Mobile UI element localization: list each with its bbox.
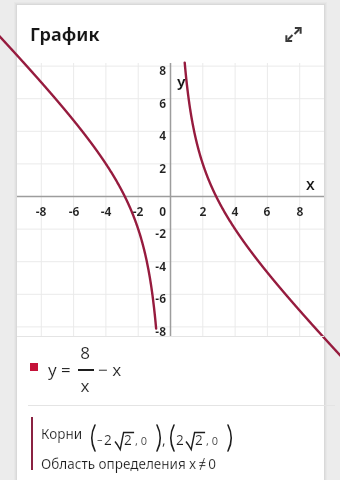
staticText: Корни: [41, 425, 83, 443]
staticText: x: [75, 374, 95, 397]
staticText: -6: [142, 290, 166, 306]
staticText: -4: [142, 258, 166, 274]
staticText: , 0: [135, 433, 148, 448]
staticText: -2: [126, 203, 150, 219]
staticText: 0: [150, 203, 166, 219]
staticText: 2: [195, 431, 203, 449]
staticText: 4: [142, 127, 166, 143]
staticText: -8: [29, 203, 53, 219]
staticText: 6: [255, 203, 279, 219]
staticText: y: [177, 71, 186, 91]
staticText: -6: [62, 203, 86, 219]
button[interactable]: Expand graph: [275, 16, 312, 53]
staticText: 8: [142, 62, 166, 78]
staticText: 8: [75, 341, 95, 364]
staticText: 8: [288, 203, 312, 219]
staticText: 2: [124, 431, 132, 449]
staticText: X: [306, 176, 315, 194]
staticText: 2: [191, 203, 215, 219]
staticText: 6: [142, 95, 166, 111]
staticText: x ≠ 0: [189, 455, 217, 473]
staticText: − x: [98, 358, 122, 381]
staticText: График: [30, 22, 100, 47]
staticText: 2: [176, 431, 184, 449]
staticText: -8: [142, 323, 166, 339]
staticText: 4: [223, 203, 247, 219]
staticText: Область определения: [41, 455, 186, 473]
staticText: –: [97, 431, 103, 446]
staticText: , 0: [206, 433, 219, 448]
staticText: ,: [162, 431, 166, 449]
staticText: 2: [104, 431, 112, 449]
staticText: y =: [48, 358, 71, 381]
staticText: -2: [142, 225, 166, 241]
staticText: -4: [94, 203, 118, 219]
staticText: 2: [142, 160, 166, 176]
